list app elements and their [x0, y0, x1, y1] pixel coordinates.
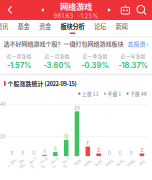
staticText: 网络游戏	[60, 0, 92, 12]
staticText: 7	[86, 141, 89, 146]
staticText: -3~-1%	[62, 159, 71, 167]
staticText: 下跌 48	[130, 90, 147, 97]
button[interactable]: Search	[136, 5, 147, 15]
staticText: 近一周涨幅	[6, 52, 31, 59]
staticText: 20	[0, 134, 6, 139]
button[interactable]: 板块分析	[56, 20, 88, 36]
button[interactable]: AI assistant	[120, 5, 131, 15]
staticText: 3~5%	[105, 161, 114, 165]
staticText: 论坛	[94, 22, 106, 31]
staticText: 新闻	[115, 22, 127, 31]
staticText: 近一季涨幅	[82, 52, 107, 59]
staticText: -0.39%	[81, 61, 108, 70]
staticText: -18.37%	[118, 61, 147, 70]
staticText: 平盘 1	[107, 90, 121, 97]
staticText: -1.57%	[7, 61, 31, 70]
staticText: 资金	[39, 22, 51, 31]
staticText: 个股涨跌统计 (2022-09-15)	[8, 79, 77, 88]
staticText: 近一年涨幅	[120, 52, 145, 59]
button[interactable]: Next sector	[106, 3, 112, 17]
staticText: 1	[43, 149, 45, 154]
staticText: 上涨 11	[82, 90, 99, 97]
staticText: 0~1%	[84, 161, 92, 165]
button[interactable]: 资金	[35, 20, 55, 36]
staticText: -10~-9%	[18, 159, 27, 167]
staticText: 0	[119, 150, 122, 156]
staticText: 1~3%	[95, 161, 103, 165]
button[interactable]: 选不好网络游戏个股？一键打包网络游戏板块	[0, 37, 152, 49]
staticText: -3.60%	[43, 61, 70, 70]
staticText: 0	[32, 150, 35, 156]
staticText: 961.63 -1.25%	[53, 13, 98, 20]
staticText: 3	[54, 146, 57, 152]
button[interactable]: 论坛	[90, 20, 110, 36]
button[interactable]: 新闻	[111, 20, 131, 36]
staticText: 7~9%	[127, 161, 136, 165]
staticText: 资讯	[0, 22, 8, 31]
button[interactable]: Previous sector	[39, 3, 45, 17]
staticText: <-10%	[7, 161, 17, 165]
staticText: 2	[97, 147, 100, 153]
staticText: 2	[140, 147, 143, 153]
staticText: -7~-5%	[39, 159, 49, 167]
staticText: 近一月涨幅	[44, 52, 69, 59]
staticText: 基金	[17, 22, 29, 31]
staticText: 选不好网络游戏个股？一键打包网络游戏板块	[3, 39, 123, 48]
button[interactable]: 基金	[13, 20, 33, 36]
staticText: 12	[64, 134, 69, 139]
staticText: -9~-7%	[29, 159, 39, 167]
staticText: 0	[108, 150, 111, 156]
staticText: 0	[130, 150, 133, 156]
staticText: 0	[21, 150, 24, 156]
button[interactable]: Back	[0, 0, 20, 20]
staticText: 板块分析	[60, 22, 84, 31]
staticText: 33	[74, 105, 80, 111]
button[interactable]: 资讯	[0, 20, 12, 36]
staticText: 5~7%	[116, 161, 125, 165]
staticText: >9%	[138, 161, 145, 165]
staticText: -5~-3%	[50, 159, 60, 167]
staticText: 去投资 ›	[127, 39, 148, 48]
staticText: 0	[10, 150, 13, 156]
staticText: -1~0%	[72, 161, 82, 165]
staticText: 40	[0, 102, 6, 107]
